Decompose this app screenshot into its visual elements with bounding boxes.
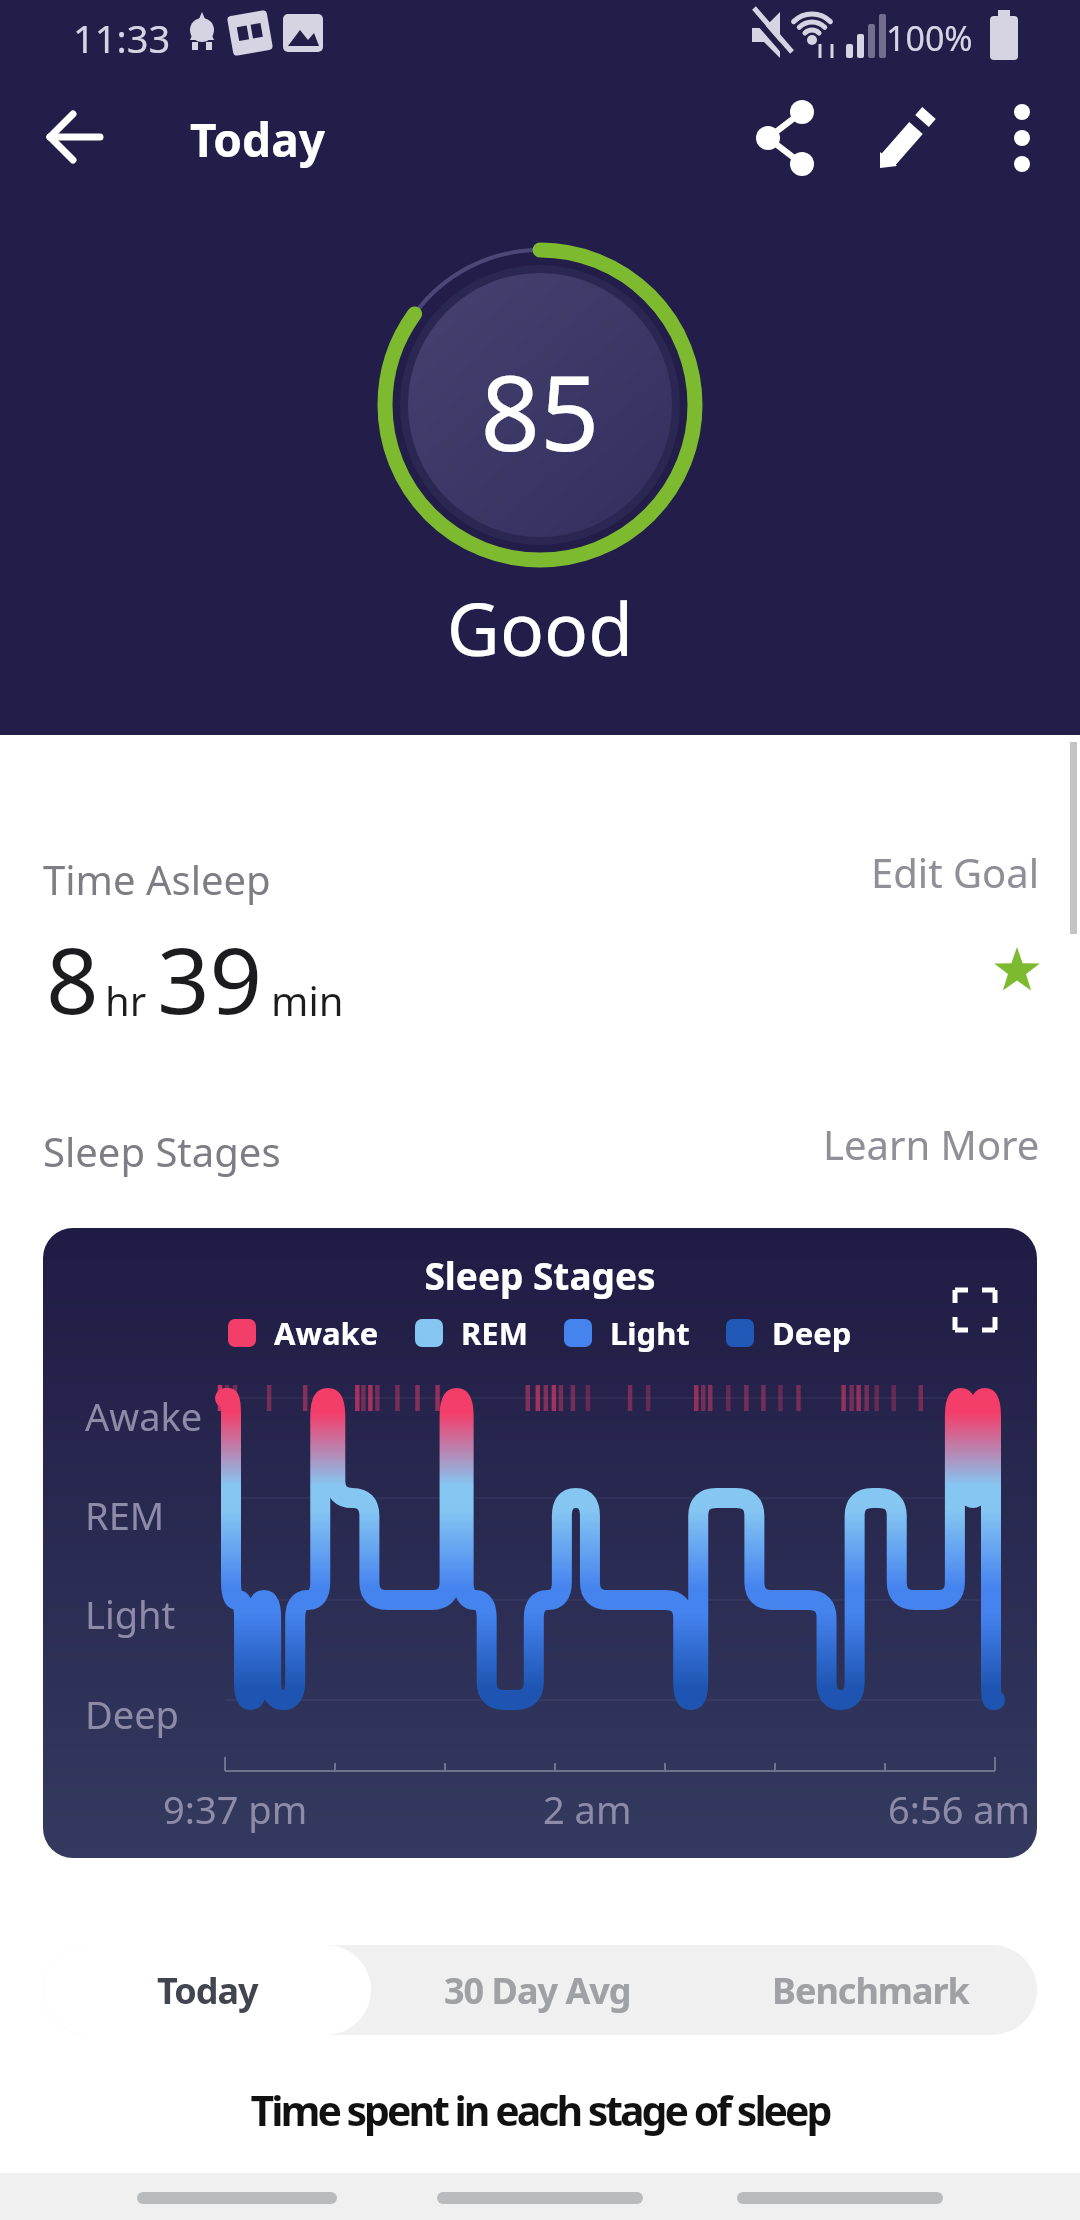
staticText: Edit Goal [871, 845, 1040, 899]
button[interactable] [40, 102, 110, 172]
staticText: Today [190, 108, 325, 171]
staticText: Time spent in each stage of sleep [0, 2082, 1080, 2138]
staticText: 11:33 [73, 12, 171, 64]
button[interactable]: Today [43, 1945, 371, 2035]
staticText: 85 [0, 340, 1080, 482]
staticText: 6:56 am [888, 1783, 1031, 1835]
staticText: Time Asleep [43, 852, 271, 906]
staticText: min [271, 973, 344, 1027]
staticText: hr [105, 973, 147, 1027]
button[interactable] [872, 100, 948, 176]
staticText: 100% [886, 15, 973, 61]
staticText: Awake [85, 1390, 203, 1442]
button[interactable] [990, 100, 1054, 176]
button[interactable]: Sleep Stages [43, 1228, 1037, 1858]
button[interactable] [750, 100, 826, 176]
staticText: Good [0, 578, 1080, 677]
staticText: Learn More [823, 1117, 1040, 1171]
button[interactable]: Learn More [820, 1112, 1040, 1176]
staticText: Benchmark [772, 1966, 969, 2015]
staticText: 8 [46, 916, 99, 1041]
staticText: Light [610, 1312, 690, 1354]
button[interactable]: 30 Day Avg [371, 1945, 704, 2035]
staticText: Today [157, 1966, 258, 2015]
button[interactable]: Edit Goal [860, 840, 1040, 904]
staticText: 2 am [543, 1783, 632, 1835]
staticText: Sleep Stages [43, 1124, 281, 1178]
staticText: Deep [772, 1312, 852, 1354]
staticText: REM [85, 1489, 165, 1541]
button[interactable]: Benchmark [704, 1945, 1037, 2035]
staticText: Sleep Stages [43, 1250, 1037, 1300]
staticText: REM [461, 1312, 528, 1354]
staticText: 30 Day Avg [444, 1966, 631, 2015]
staticText: Deep [85, 1688, 179, 1740]
staticText: Awake [274, 1312, 379, 1354]
staticText: 9:37 pm [163, 1783, 308, 1835]
staticText: Light [85, 1588, 176, 1640]
staticText: 39 [157, 916, 263, 1041]
